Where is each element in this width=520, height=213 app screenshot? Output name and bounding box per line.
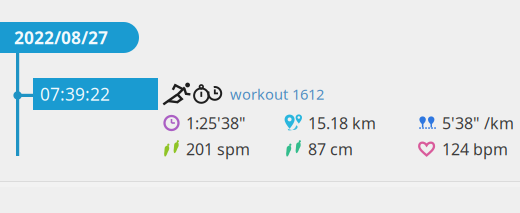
staticText: 2022/08/27 <box>14 26 108 49</box>
staticText: 15.18 km <box>308 112 376 134</box>
staticText: 201 spm <box>186 138 250 160</box>
staticText: 87 cm <box>308 138 353 160</box>
staticText: 5'38" /km <box>442 112 514 134</box>
button[interactable]: 2022/08/27 <box>0 22 159 53</box>
staticText: workout 1612 <box>230 84 324 104</box>
staticText: 124 bpm <box>442 138 508 160</box>
staticText: 07:39:22 <box>40 82 110 105</box>
staticText: 1:25'38" <box>186 112 246 134</box>
